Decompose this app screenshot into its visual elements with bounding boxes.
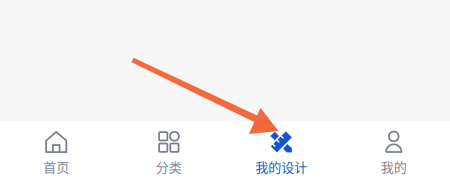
button[interactable]: 分类 (112, 121, 225, 180)
button[interactable]: 首页 (0, 121, 112, 180)
staticText: 我的 (381, 157, 407, 176)
button[interactable]: 我的设计 (225, 121, 337, 180)
button[interactable]: 我的 (337, 121, 450, 180)
staticText: 首页 (43, 157, 69, 176)
staticText: 我的设计 (255, 157, 307, 176)
staticText: 分类 (156, 157, 182, 176)
